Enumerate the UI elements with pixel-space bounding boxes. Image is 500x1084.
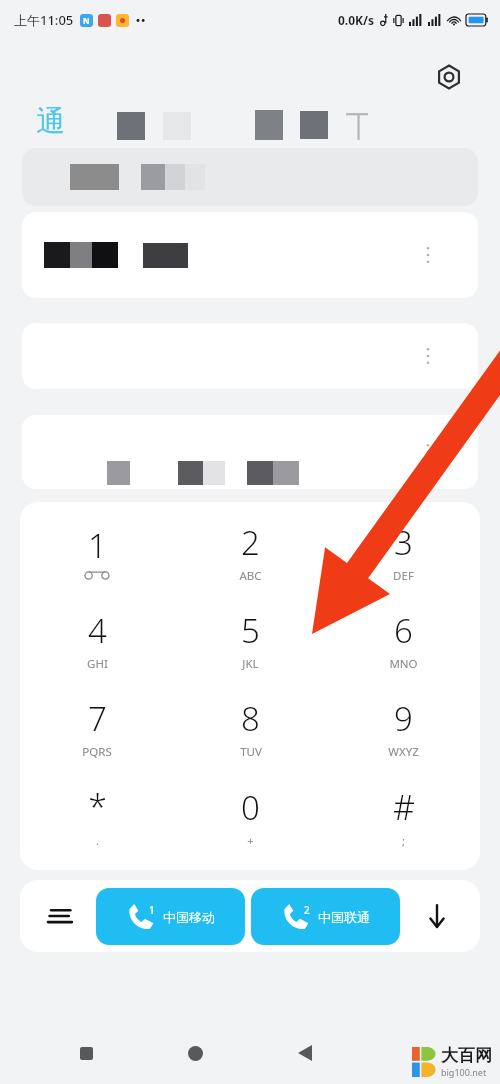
staticText: 6 [394,608,413,653]
staticText: 中国移动 [163,909,215,925]
button[interactable]: More options [414,438,442,466]
button[interactable]: 6 [327,596,480,684]
button[interactable]: Home [172,1030,218,1076]
staticText: 9 [394,696,413,741]
button[interactable]: More options [22,323,478,389]
button[interactable]: More options [22,212,478,298]
button[interactable]: 2 [174,508,327,596]
staticText: 0.0K/s [338,12,375,28]
button[interactable]: Back [282,1030,328,1076]
button[interactable]: Menu [26,880,96,952]
staticText: 2 [241,520,260,565]
staticText: MNO [389,656,418,672]
button[interactable]: # [327,772,480,860]
button[interactable]: 1 [96,888,245,945]
staticText: TUV [240,744,262,760]
button[interactable]: 9 [327,684,480,772]
staticText: ABC [239,568,262,584]
staticText: 3 [394,520,413,565]
staticText: ; [402,833,405,848]
staticText: 通 [36,103,65,140]
staticText: 0 [241,785,260,830]
button[interactable]: Hide keypad [400,880,474,952]
button[interactable]: 4 [20,596,174,684]
button[interactable]: 1 [20,508,174,596]
staticText: WXYZ [388,744,419,760]
staticText: # [393,784,415,830]
staticText: 4 [88,608,107,653]
button[interactable]: 2 [251,888,400,945]
button[interactable]: 3 [327,508,480,596]
button[interactable]: Settings [432,60,466,94]
button[interactable]: 7 [20,684,174,772]
staticText: 5 [241,608,260,653]
button[interactable]: * [20,772,174,860]
button[interactable]: 5 [174,596,327,684]
staticText: 7 [88,696,107,741]
staticText: N [83,15,90,26]
button[interactable]: More options [414,342,442,370]
button[interactable]: 通 [36,103,65,140]
staticText: big100.net [441,1066,487,1078]
staticText: 中国联通 [318,909,370,925]
staticText: * [88,784,107,830]
staticText: DEF [393,568,414,584]
staticText: JKL [242,656,259,672]
staticText: GHI [87,656,108,672]
staticText: 1 [88,523,107,568]
staticText: . [96,833,99,848]
staticText: + [247,833,254,848]
staticText: PQRS [82,744,112,760]
button[interactable] [22,148,478,206]
button[interactable]: More options [22,415,478,489]
button[interactable]: More options [414,241,442,269]
staticText: 上午11:05 [14,11,74,29]
staticText: 8 [241,696,260,741]
button[interactable]: Recents [63,1030,109,1076]
button[interactable]: 8 [174,684,327,772]
staticText: 1 [149,903,155,917]
button[interactable]: 0 [174,772,327,860]
button[interactable] [117,112,191,140]
button[interactable] [255,110,370,140]
staticText: 2 [304,903,310,917]
staticText: 大百网 [441,1045,492,1066]
